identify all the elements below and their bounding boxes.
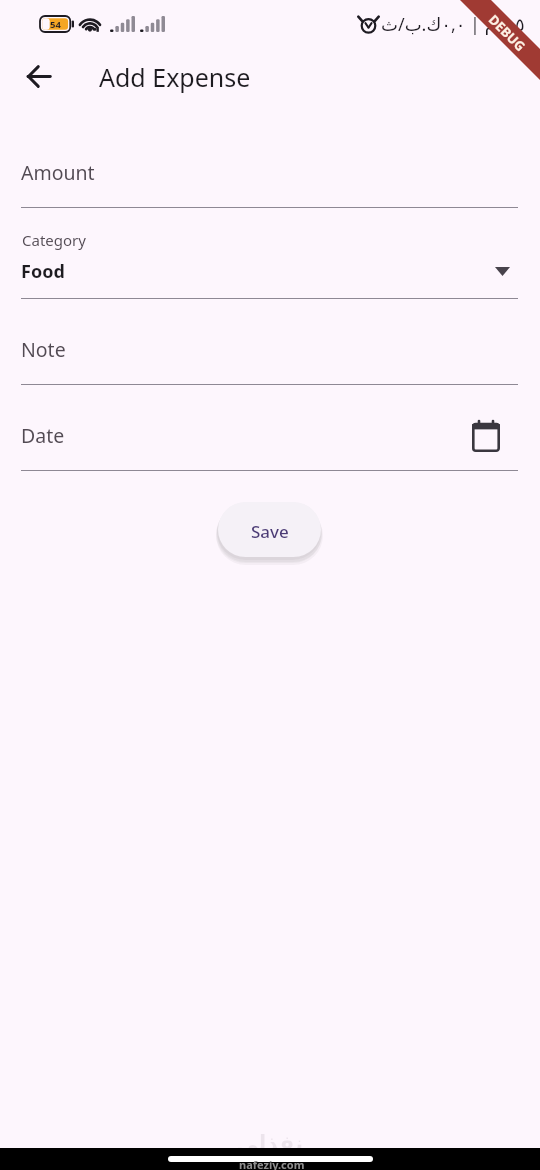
button[interactable]: Note (21, 322, 518, 381)
staticText: Save (251, 520, 289, 543)
button[interactable]: Save (218, 502, 321, 557)
staticText: 54 (50, 18, 61, 31)
staticText: Date (21, 422, 65, 449)
staticText: ٤.٥ م | ٠,٠ك.ب/ث (381, 12, 525, 37)
staticText: نفذلي (236, 1131, 304, 1157)
button[interactable]: Pick date (21, 411, 518, 470)
staticText: DEBUG (485, 11, 529, 55)
staticText: Note (21, 336, 66, 363)
staticText: Add Expense (99, 60, 251, 94)
button[interactable]: Amount (21, 144, 518, 204)
staticText: Category (22, 230, 86, 250)
button[interactable]: Back (14, 51, 64, 101)
staticText: Food (21, 259, 65, 284)
staticText: nafeziy.com (239, 1157, 305, 1170)
staticText: Amount (21, 159, 95, 186)
button[interactable]: Category (21, 222, 518, 298)
other: Select category (487, 256, 517, 286)
